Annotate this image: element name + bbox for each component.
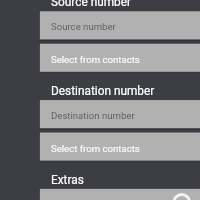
staticText: Source number xyxy=(51,0,132,9)
button[interactable]: Source number xyxy=(40,11,200,39)
button[interactable]: Select from contacts xyxy=(40,44,200,72)
button[interactable]: Destination number xyxy=(40,100,200,128)
staticText: Select from contacts xyxy=(51,143,140,154)
staticText: Select from contacts xyxy=(51,54,140,65)
staticText: Extras xyxy=(51,173,84,187)
staticText: Destination number xyxy=(51,110,135,121)
button[interactable]: Toggle extra option xyxy=(171,191,192,200)
button[interactable]: Select from contacts xyxy=(40,133,200,161)
button[interactable] xyxy=(40,189,200,200)
staticText: Destination number xyxy=(51,84,155,98)
staticText: Source number xyxy=(51,21,116,32)
